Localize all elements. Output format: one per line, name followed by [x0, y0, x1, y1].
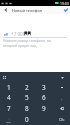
staticText: Ok: [59, 117, 65, 123]
staticText: *: [8, 117, 11, 123]
button[interactable]: Country code: [3, 31, 9, 37]
staticText: Укажите номер телефона, на который придё…: [3, 38, 51, 48]
button[interactable]: 6: [35, 92, 52, 103]
button[interactable]: More options: [59, 74, 66, 81]
staticText: 9: [42, 104, 46, 113]
staticText: 1: [7, 83, 11, 92]
button[interactable]: 5: [18, 92, 35, 103]
staticText: 5: [25, 93, 29, 102]
button[interactable]: Back: [0, 6, 11, 14]
button[interactable]: 9: [35, 103, 52, 114]
staticText: +7 900: [11, 31, 26, 37]
button[interactable]: Backspace: [53, 103, 70, 114]
staticText: 7: [7, 104, 11, 113]
button[interactable]: Dash: [53, 82, 70, 92]
button[interactable]: 3: [35, 82, 52, 92]
staticText: ,: [61, 95, 63, 101]
staticText: 3: [42, 83, 46, 92]
button[interactable]: 4: [0, 92, 18, 103]
button[interactable]: Done: [61, 6, 70, 14]
button[interactable]: 1: [0, 82, 18, 92]
button[interactable]: Keyboard settings: [1, 74, 8, 81]
staticText: 0: [25, 115, 29, 124]
button[interactable]: 2: [18, 82, 35, 92]
staticText: 6: [42, 93, 46, 102]
staticText: Новый телефон: [12, 8, 43, 13]
button[interactable]: 0: [18, 114, 35, 125]
button[interactable]: *: [0, 114, 18, 125]
staticText: 19:03: [60, 1, 69, 6]
staticText: 4: [7, 93, 11, 102]
staticText: 8: [25, 104, 29, 113]
button[interactable]: 7: [0, 103, 18, 114]
button[interactable]: Ok: [53, 114, 70, 125]
staticText: 2: [25, 83, 29, 92]
button[interactable]: 8: [18, 103, 35, 114]
